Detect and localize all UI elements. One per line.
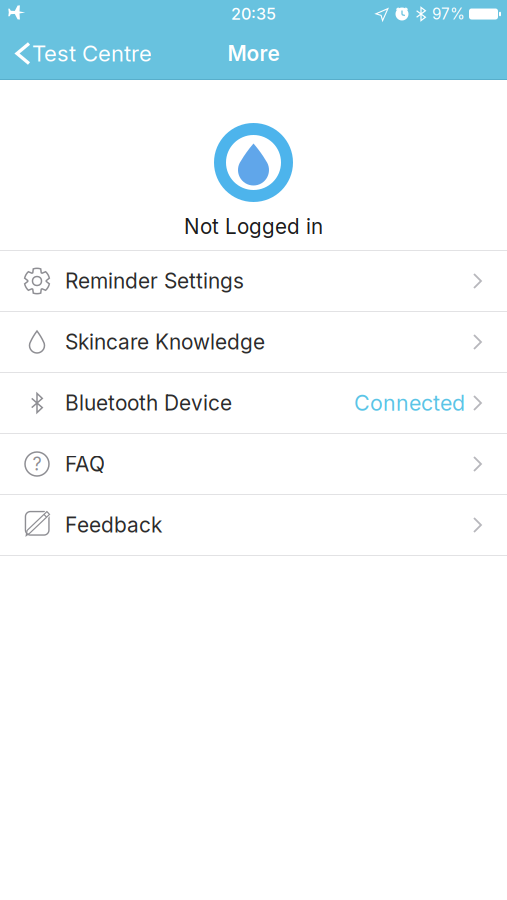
staticText: Connected xyxy=(354,390,465,416)
staticText: ? xyxy=(32,453,41,475)
staticText: Feedback xyxy=(65,512,162,538)
staticText: Test Centre xyxy=(32,40,152,67)
staticText: 97% xyxy=(432,5,465,23)
button[interactable]: Back xyxy=(0,40,152,67)
staticText: More xyxy=(227,41,279,66)
button[interactable]: Feedback xyxy=(0,495,507,556)
staticText: 20:35 xyxy=(231,4,276,24)
button[interactable]: Reminder Settings xyxy=(0,251,507,312)
button[interactable]: Bluetooth Device xyxy=(0,373,507,434)
button[interactable]: ? xyxy=(0,434,507,495)
staticText: Not Logged in xyxy=(184,214,323,239)
staticText: Reminder Settings xyxy=(65,268,244,294)
staticText: FAQ xyxy=(65,451,105,477)
staticText: Bluetooth Device xyxy=(65,390,232,416)
staticText: Skincare Knowledge xyxy=(65,329,265,355)
button[interactable]: Skincare Knowledge xyxy=(0,312,507,373)
